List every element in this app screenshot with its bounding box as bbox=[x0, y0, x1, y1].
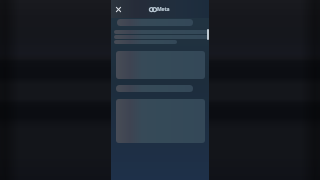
button[interactable] bbox=[116, 51, 205, 79]
button[interactable] bbox=[114, 40, 177, 44]
staticText: Meta bbox=[157, 6, 170, 13]
button[interactable] bbox=[117, 19, 193, 26]
button[interactable] bbox=[114, 30, 209, 34]
button[interactable] bbox=[116, 99, 205, 143]
button[interactable] bbox=[116, 85, 193, 92]
button[interactable]: Close bbox=[112, 3, 125, 16]
button[interactable] bbox=[114, 35, 209, 39]
